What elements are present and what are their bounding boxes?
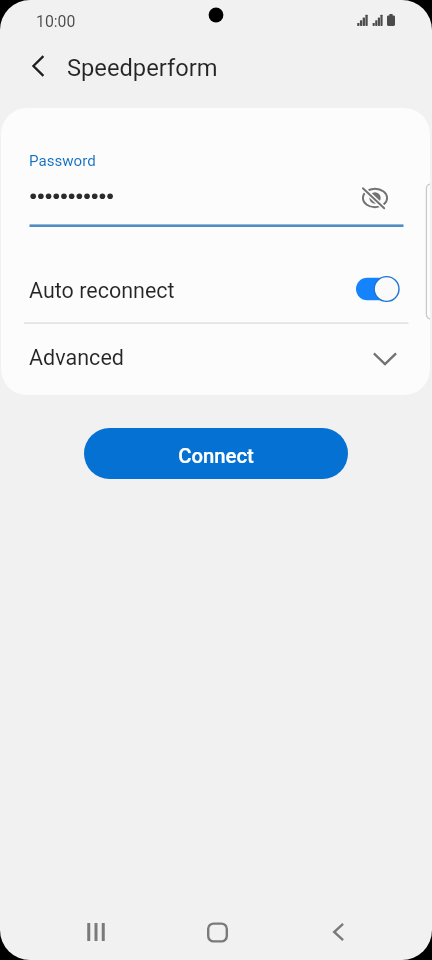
- staticText: Advanced: [29, 345, 380, 370]
- button[interactable]: Advanced: [1, 324, 430, 390]
- button[interactable]: Show password: [357, 180, 393, 216]
- button[interactable]: Auto reconnect on: [356, 275, 400, 303]
- button[interactable]: Auto reconnect: [1, 262, 430, 319]
- staticText: Password: [29, 152, 96, 170]
- staticText: Speedperform: [67, 54, 218, 82]
- staticText: Auto reconnect: [29, 278, 357, 303]
- staticText: 10:00: [36, 12, 76, 31]
- button[interactable]: Navigate up: [15, 42, 59, 86]
- staticText: Connect: [178, 444, 254, 468]
- button[interactable]: Connect: [84, 428, 348, 479]
- button[interactable]: Recent apps: [66, 906, 126, 958]
- button[interactable]: Home: [187, 906, 247, 958]
- button[interactable]: Back: [308, 906, 368, 958]
